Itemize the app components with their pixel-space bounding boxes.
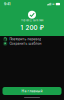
staticText: Повторить перевод	[9, 37, 41, 41]
staticText: Сохранить шаблон	[9, 42, 41, 46]
staticText: ≋	[52, 2, 55, 6]
staticText: 9:41	[4, 2, 10, 6]
staticText: 1 200 ₽	[20, 24, 43, 31]
staticText: Перевод выполнен	[21, 19, 43, 22]
staticText: На главный	[21, 89, 42, 93]
button[interactable]: Сохранить шаблон	[0, 41, 64, 46]
button[interactable]: Повторить перевод	[0, 37, 64, 41]
button[interactable]: На главный	[2, 87, 61, 95]
